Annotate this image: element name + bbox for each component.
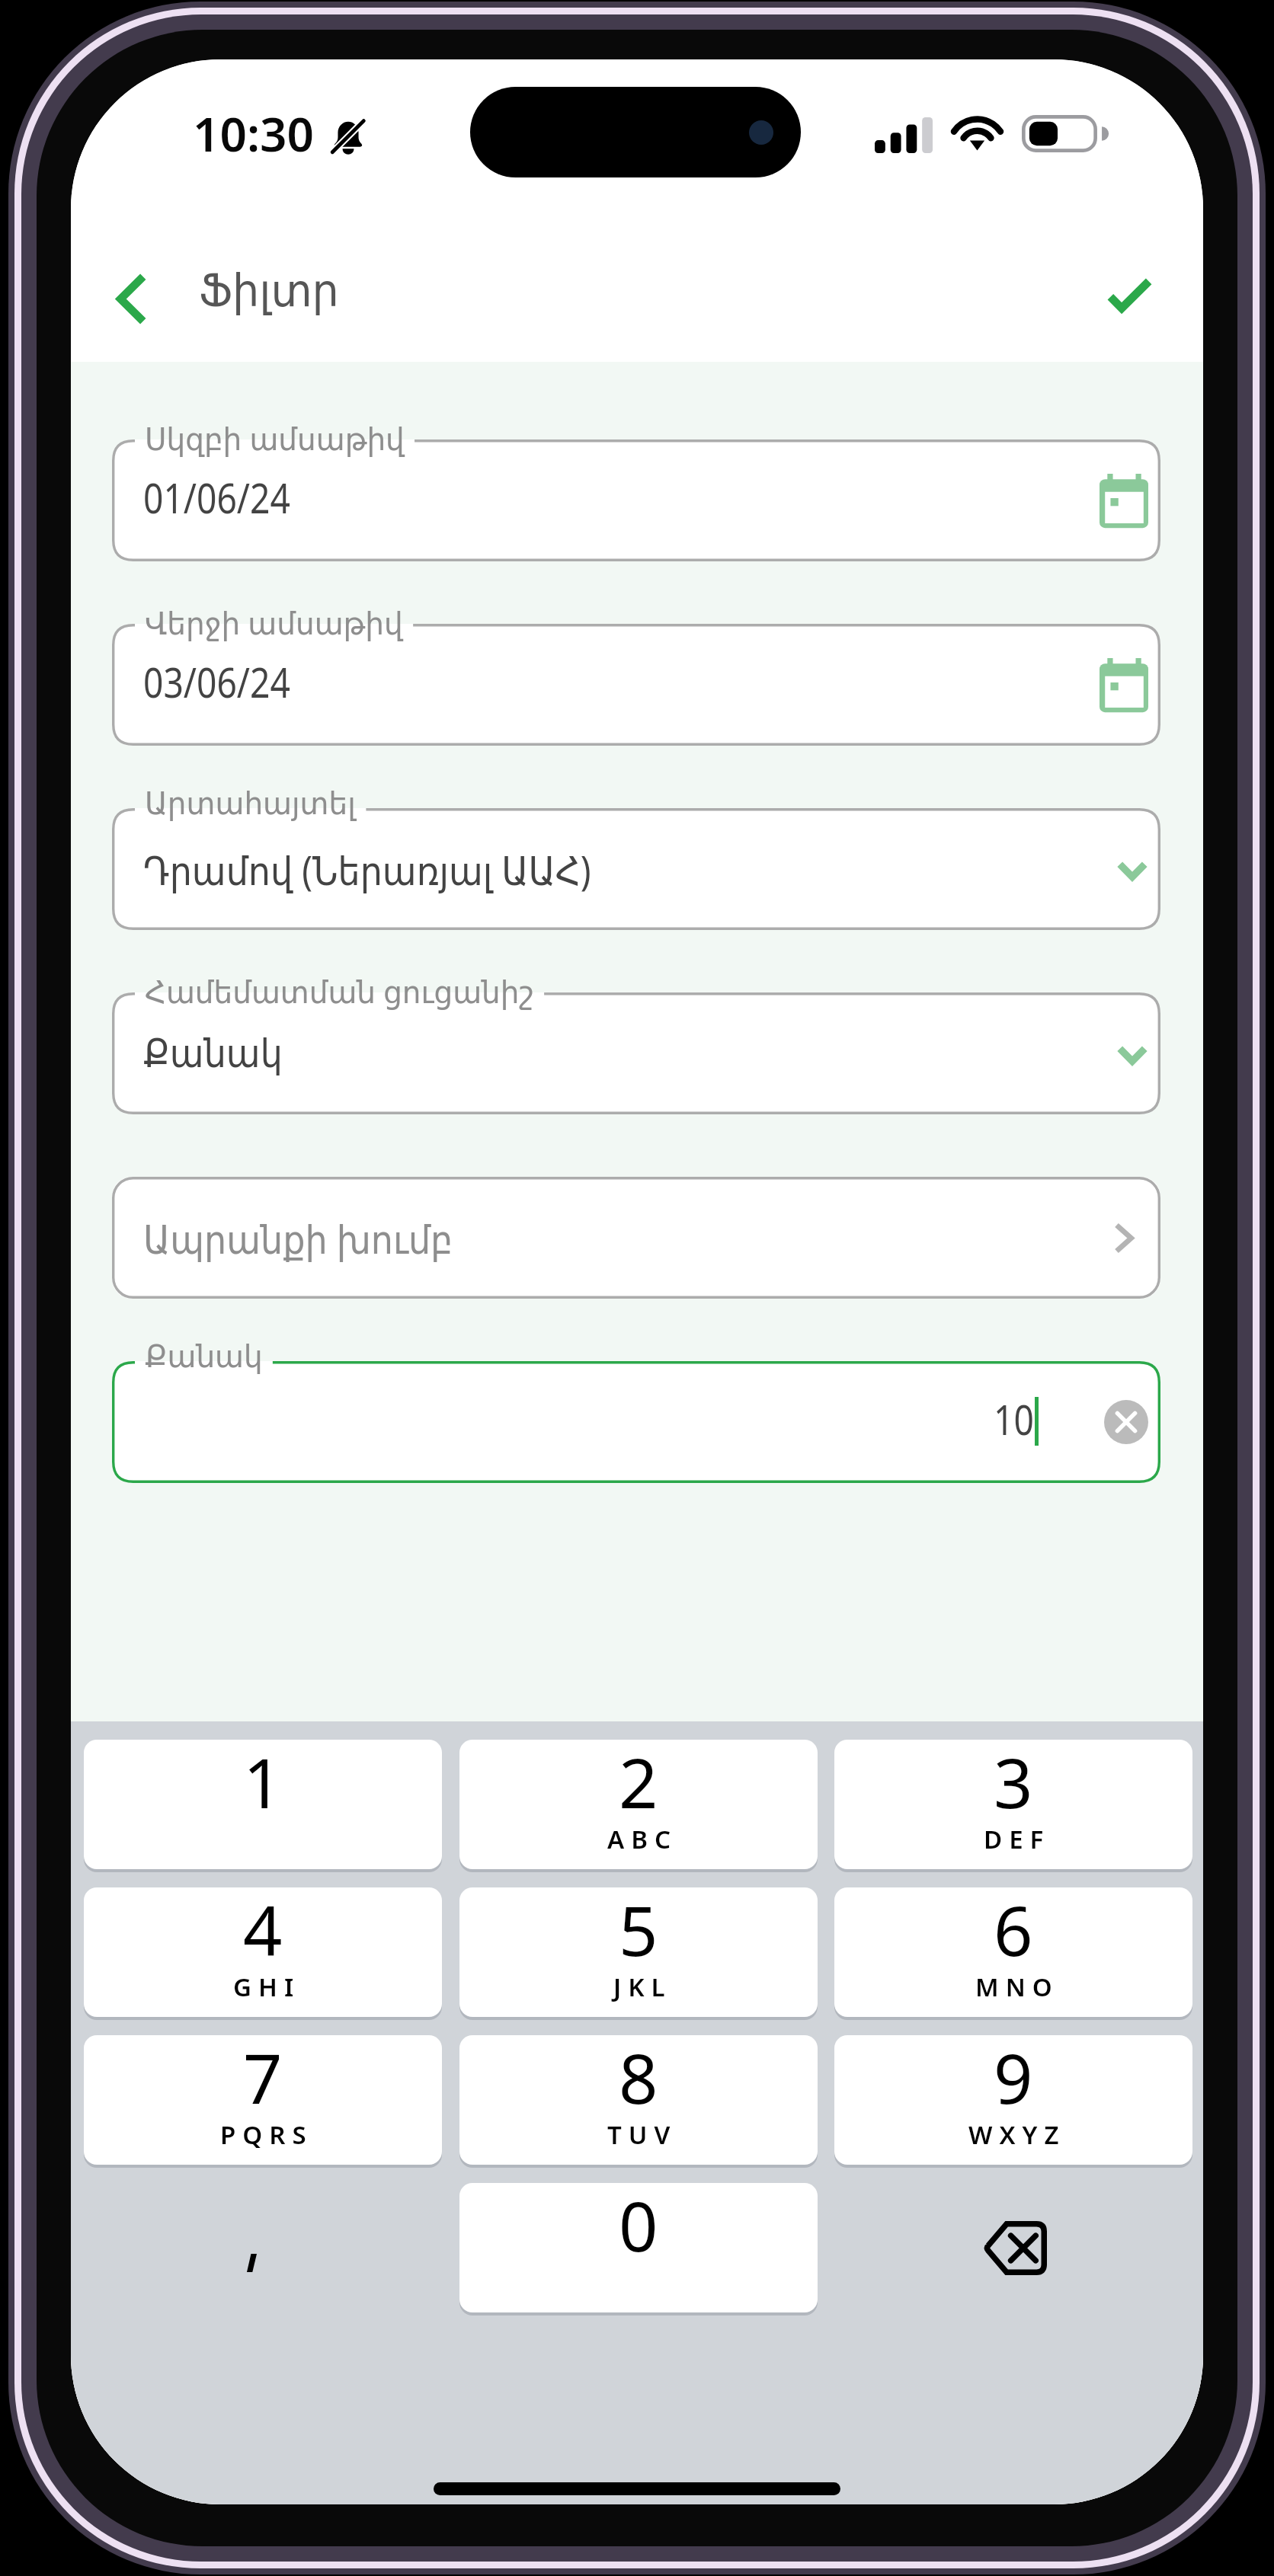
button[interactable]: Open list — [1069, 823, 1160, 915]
staticText: 5 — [619, 1887, 658, 1977]
button[interactable]: Apply — [1080, 257, 1179, 333]
button[interactable]: Open — [1069, 1192, 1160, 1283]
button[interactable]: 0 — [459, 2183, 818, 2312]
staticText: Քանակ — [143, 1031, 283, 1077]
button[interactable]: 3 — [834, 1740, 1192, 1869]
staticText: ABC — [607, 1822, 677, 1856]
button[interactable]: Ապրանքի խումբ — [112, 1177, 1160, 1299]
staticText: 9 — [994, 2035, 1033, 2124]
staticText: 10 — [994, 1391, 1034, 1447]
staticText: 1 — [243, 1740, 283, 1829]
button[interactable]: Pick date — [1069, 455, 1160, 546]
button[interactable]: 8 — [459, 2035, 818, 2165]
button[interactable]: 7 — [84, 2035, 442, 2165]
staticText: 6 — [994, 1887, 1033, 1977]
staticText: 8 — [619, 2035, 658, 2124]
button[interactable]: 1 — [84, 1740, 442, 1869]
button[interactable]: 4 — [84, 1887, 442, 2017]
button[interactable]: Դրամով (Ներառյալ ԱԱՀ) — [112, 808, 1160, 930]
staticText: GHI — [233, 1970, 301, 2004]
button[interactable]: 2 — [459, 1740, 818, 1869]
staticText: Արտահայտել — [145, 785, 356, 822]
staticText: 10:30 — [193, 101, 314, 165]
staticText: Սկզբի ամսաթիվ — [145, 417, 405, 459]
staticText: MNO — [975, 1970, 1059, 2004]
button[interactable]: Back — [82, 260, 181, 337]
staticText: Ֆիլտր — [199, 265, 339, 317]
staticText: Քանակ — [145, 1338, 263, 1375]
button[interactable]: Clear — [1069, 1376, 1160, 1468]
button[interactable]: Քանակ — [112, 992, 1160, 1114]
staticText: 7 — [243, 2035, 283, 2124]
staticText: Ապրանքի խումբ — [143, 1211, 453, 1265]
staticText: DEF — [984, 1822, 1051, 1856]
button[interactable]: 03/06/24 — [112, 624, 1160, 746]
button[interactable]: 6 — [834, 1887, 1192, 2017]
button[interactable]: 5 — [459, 1887, 818, 2017]
staticText: 4 — [243, 1887, 283, 1977]
button[interactable]: 01/06/24 — [112, 439, 1160, 561]
button[interactable]: Open list — [1069, 1008, 1160, 1099]
button[interactable]: 9 — [834, 2035, 1192, 2165]
staticText: 03/06/24 — [143, 654, 290, 710]
staticText: TUV — [607, 2117, 677, 2152]
button[interactable]: Pick date — [1069, 639, 1160, 730]
staticText: 2 — [619, 1740, 658, 1829]
staticText: WXYZ — [968, 2117, 1066, 2152]
staticText: 01/06/24 — [143, 469, 290, 526]
staticText: Համեմատման ցուցանիշ — [145, 970, 534, 1012]
staticText: PQRS — [220, 2117, 313, 2152]
staticText: Վերջի ամսաթիվ — [145, 601, 403, 644]
staticText: Դրամով (Ներառյալ ԱԱՀ) — [143, 842, 591, 896]
staticText: JKL — [613, 1970, 672, 2004]
staticText: 3 — [994, 1740, 1033, 1829]
button[interactable]: Delete — [834, 2183, 1192, 2312]
button[interactable]: Comma — [84, 2183, 442, 2312]
staticText: 0 — [619, 2183, 658, 2272]
button[interactable]: 10 — [112, 1361, 1160, 1483]
